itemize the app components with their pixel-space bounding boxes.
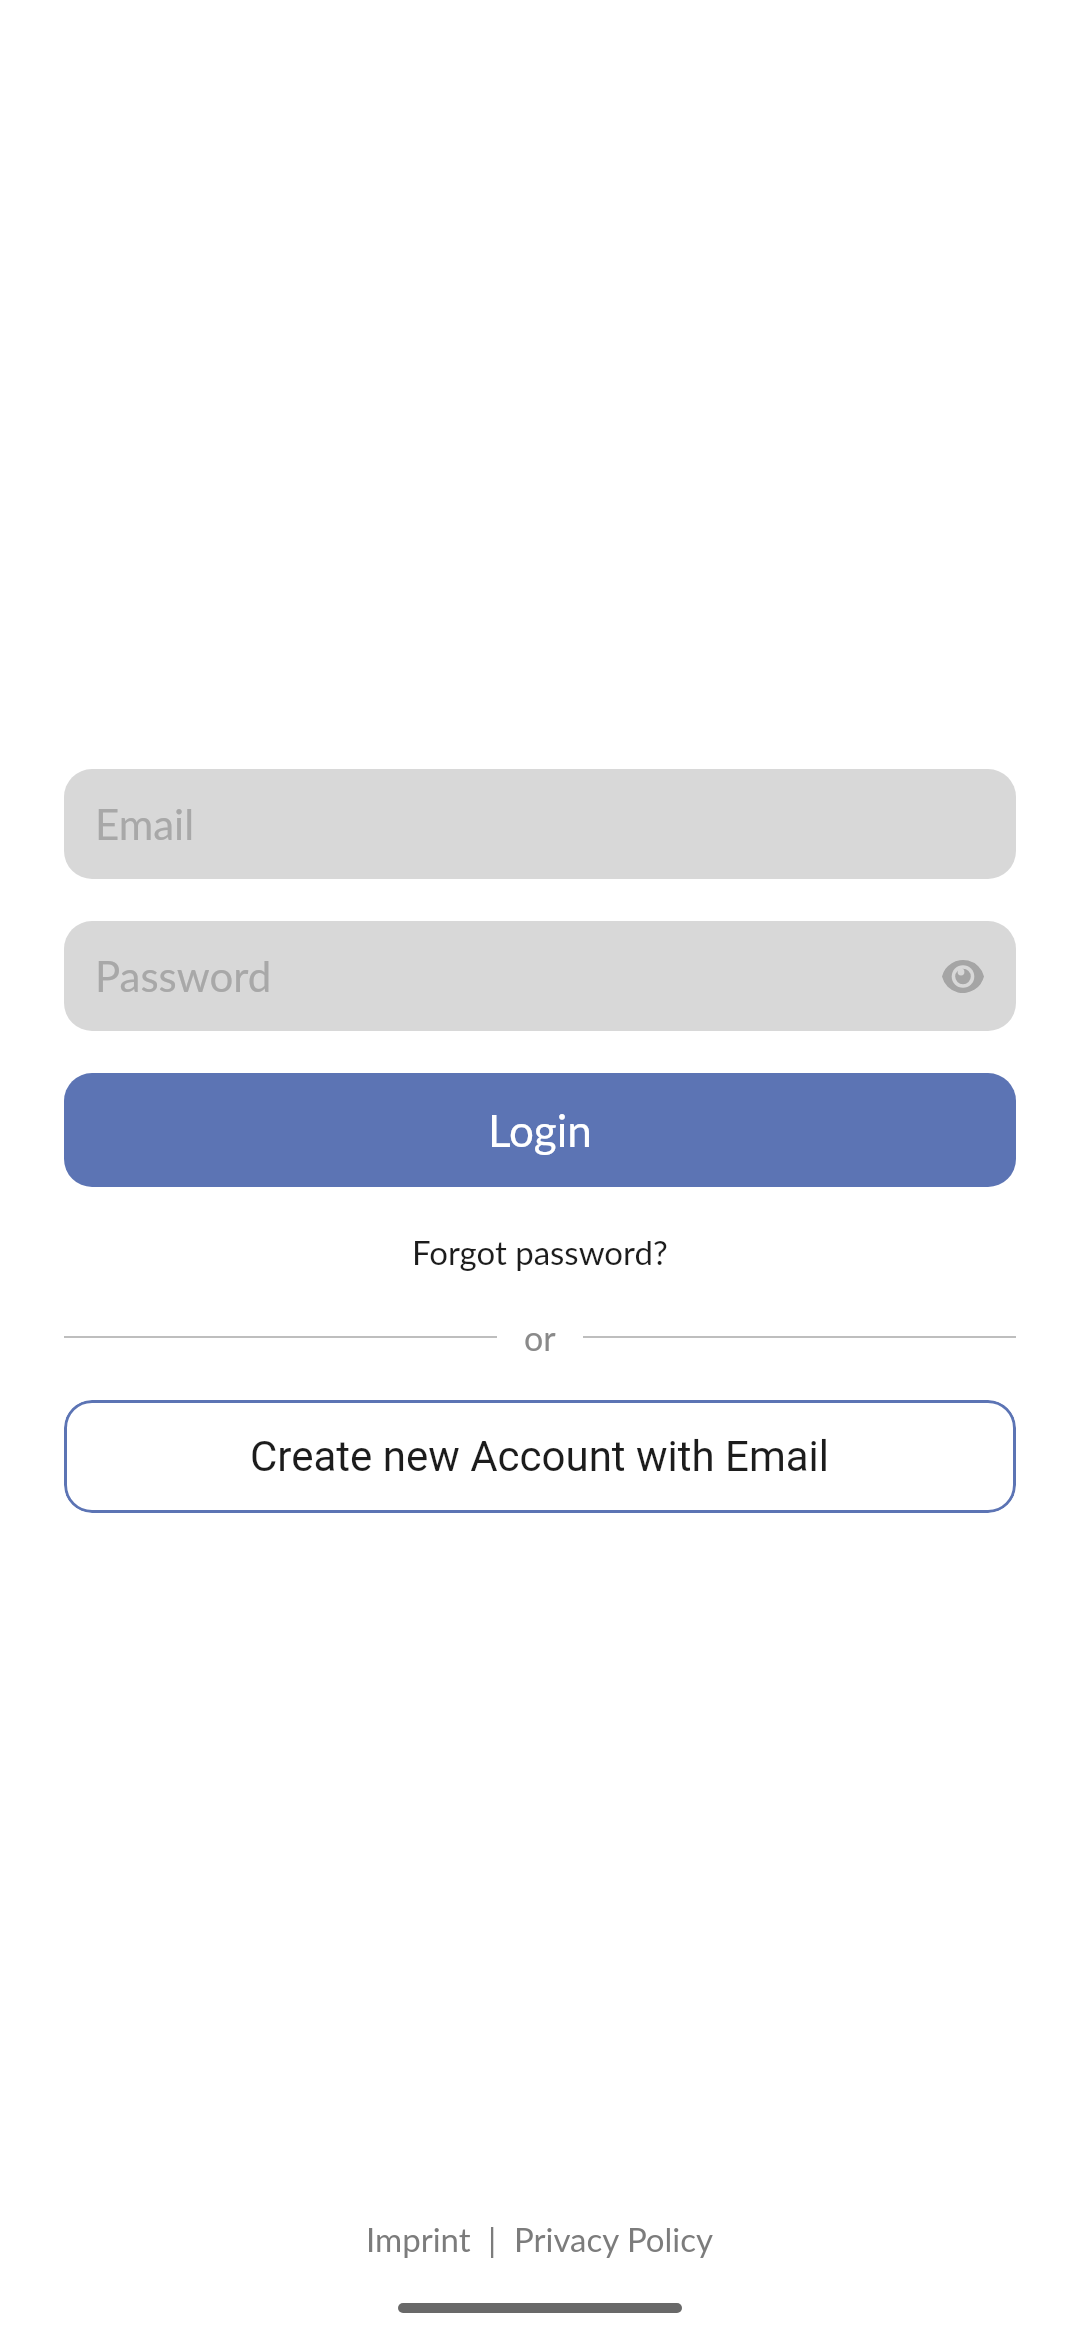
button[interactable]: Privacy Policy — [514, 2219, 714, 2259]
staticText: Create new Account with Email — [250, 1432, 830, 1481]
staticText: Password — [95, 951, 272, 1001]
button[interactable]: Imprint — [366, 2219, 471, 2259]
button[interactable]: Login — [64, 1073, 1016, 1187]
staticText: | — [471, 2219, 514, 2259]
button[interactable]: Email — [64, 769, 1016, 879]
button[interactable]: Forgot password? — [412, 1232, 668, 1272]
staticText: Login — [488, 1104, 592, 1157]
button[interactable]: Create new Account with Email — [64, 1400, 1016, 1513]
button[interactable]: Password — [64, 921, 1016, 1031]
staticText: or — [524, 1317, 556, 1358]
staticText: Email — [95, 799, 195, 849]
